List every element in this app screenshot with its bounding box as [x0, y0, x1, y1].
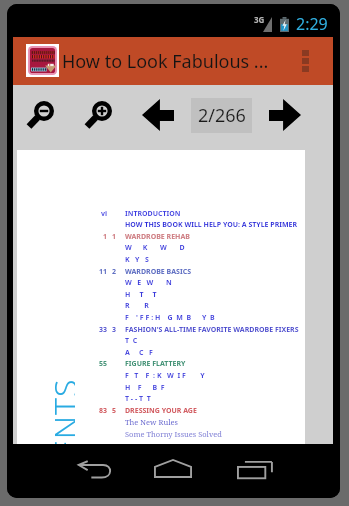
staticText: T C — [125, 336, 138, 346]
staticText: Some Thorny Issues Solved — [125, 429, 222, 439]
button[interactable]: More options — [280, 37, 333, 85]
staticText: A C F — [125, 348, 153, 358]
button[interactable]: Zoom out — [21, 92, 61, 136]
staticText: 2/266 — [198, 103, 246, 128]
button[interactable]: Recents — [224, 447, 286, 493]
button[interactable]: 2/266 — [191, 98, 252, 133]
staticText: 2 — [112, 267, 117, 277]
staticText: H T T — [125, 290, 157, 300]
staticText: 5 — [112, 406, 117, 416]
staticText: WARDROBE REHAB — [125, 232, 190, 242]
staticText: 3G — [254, 14, 265, 25]
button[interactable]: Zoom in — [79, 92, 119, 136]
staticText: W K W D — [125, 243, 185, 253]
staticText: HOW THIS BOOK WILL HELP YOU: A STYLE PRI… — [125, 220, 298, 230]
staticText: DRESSING YOUR AGE — [125, 406, 197, 416]
staticText: WARDROBE BASICS — [125, 267, 192, 277]
button[interactable]: Previous page — [138, 95, 178, 135]
staticText: 2:29 — [296, 13, 328, 35]
button[interactable]: Next page — [265, 95, 305, 135]
button[interactable]: Back — [64, 447, 126, 493]
staticText: 3 — [112, 325, 117, 335]
staticText: 83 — [99, 406, 108, 416]
staticText: How to Look Fabulous ... — [62, 49, 302, 74]
staticText: vi — [101, 209, 108, 219]
staticText: The New Rules — [125, 417, 178, 427]
staticText: FASHION'S ALL-TIME FAVORITE WARDROBE FIX… — [125, 325, 299, 335]
staticText: 1 — [112, 232, 117, 242]
staticText: FIGURE FLATTERY — [125, 359, 186, 369]
button[interactable]: Home — [142, 445, 204, 491]
staticText: 33 — [99, 325, 108, 335]
staticText: T - - T T — [125, 394, 151, 404]
staticText: R R — [125, 301, 149, 311]
staticText: INTRODUCTION — [125, 209, 181, 219]
staticText: 55 — [99, 359, 108, 369]
staticText: K Y S — [125, 255, 149, 265]
staticText: F T F : K W I F Y — [125, 371, 205, 381]
staticText: W E W N — [125, 278, 172, 288]
staticText: 11 — [99, 267, 108, 277]
staticText: F ' F F : H G M B Y B — [125, 313, 215, 323]
staticText: 1 — [103, 232, 108, 242]
staticText: H F B F — [125, 383, 165, 393]
staticText: ENTS — [43, 378, 75, 458]
